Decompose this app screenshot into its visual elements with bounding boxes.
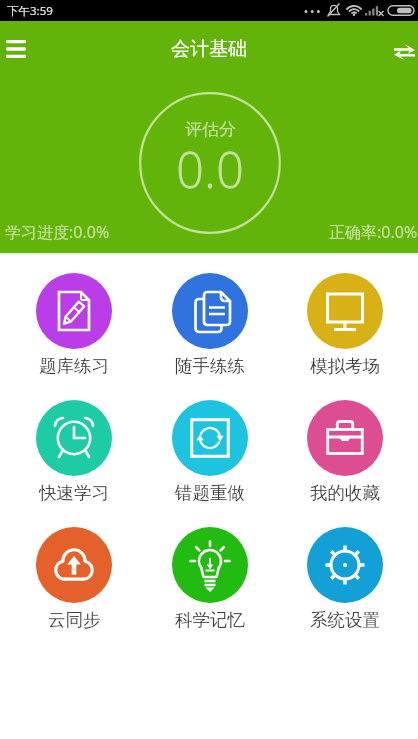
- staticText: 下午3:59: [7, 3, 53, 19]
- button[interactable]: Switch subject: [391, 39, 417, 65]
- button[interactable]: 系统设置: [277, 527, 412, 631]
- button[interactable]: Menu: [2, 35, 30, 63]
- staticText: 0.0: [176, 136, 244, 203]
- button[interactable]: 随手练练: [142, 273, 277, 377]
- button[interactable]: 我的收藏: [277, 400, 412, 504]
- button[interactable]: 快速学习: [6, 400, 142, 504]
- button[interactable]: 模拟考场: [277, 273, 412, 377]
- staticText: 模拟考场: [310, 355, 380, 377]
- staticText: 快速学习: [39, 482, 109, 504]
- button[interactable]: 云同步: [6, 527, 142, 631]
- staticText: 系统设置: [310, 609, 380, 631]
- staticText: 云同步: [48, 609, 101, 631]
- button[interactable]: 科学记忆: [142, 527, 277, 631]
- staticText: 正确率:0.0%: [329, 221, 418, 243]
- staticText: 评估分: [185, 119, 236, 140]
- staticText: 我的收藏: [310, 482, 380, 504]
- staticText: 随手练练: [175, 355, 245, 377]
- staticText: 错题重做: [175, 482, 245, 504]
- staticText: 科学记忆: [175, 609, 245, 631]
- staticText: 题库练习: [39, 355, 109, 377]
- button[interactable]: 错题重做: [142, 400, 277, 504]
- button[interactable]: 题库练习: [6, 273, 142, 377]
- staticText: 会计基础: [171, 37, 247, 61]
- staticText: 学习进度:0.0%: [5, 221, 110, 243]
